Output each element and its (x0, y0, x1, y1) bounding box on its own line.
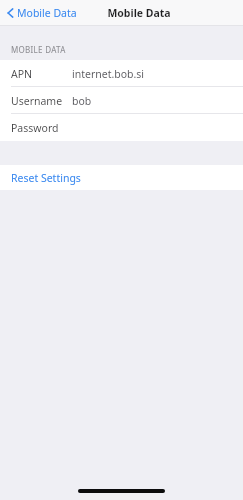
button[interactable]: Password (0, 114, 243, 141)
staticText: Reset Settings (11, 171, 81, 185)
button[interactable]: APN (0, 60, 243, 87)
button[interactable]: Username (0, 87, 243, 114)
staticText: Username (11, 94, 63, 108)
staticText: APN (11, 67, 33, 81)
other: Back (7, 7, 14, 19)
staticText: MOBILE DATA (11, 44, 66, 55)
staticText: Mobile Data (17, 6, 77, 20)
staticText: Password (11, 121, 59, 135)
button[interactable]: Back (5, 3, 79, 23)
staticText: internet.bob.si (72, 67, 145, 81)
staticText: Mobile Data (107, 6, 171, 20)
button[interactable]: Reset Settings (0, 165, 243, 190)
staticText: bob (72, 94, 92, 108)
